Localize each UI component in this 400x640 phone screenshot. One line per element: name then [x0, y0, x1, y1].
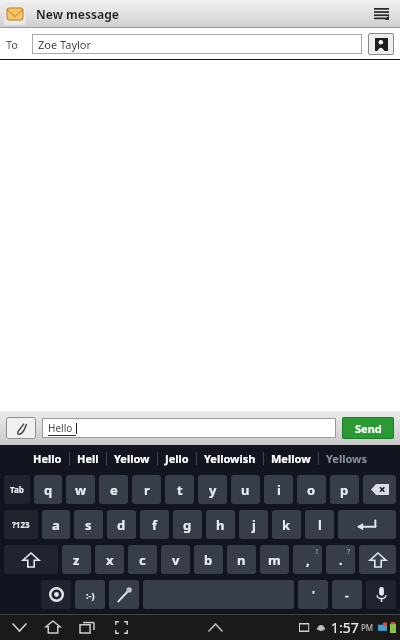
button[interactable]: Enter [338, 510, 396, 539]
staticText: g [183, 516, 192, 534]
staticText: q [44, 481, 53, 499]
button[interactable]: Hello [42, 418, 336, 438]
button[interactable]: Handwriting [109, 580, 139, 609]
staticText: Hello [33, 451, 62, 466]
staticText: , [306, 551, 310, 569]
button[interactable]: w [66, 475, 95, 504]
button[interactable]: m [260, 545, 289, 574]
button[interactable]: Voice input [366, 580, 396, 609]
staticText: Jello [165, 451, 189, 466]
staticText: t [177, 481, 183, 499]
button[interactable]: Apostrophe [298, 580, 328, 609]
button[interactable]: y [198, 475, 227, 504]
staticText: Send [355, 421, 382, 436]
button[interactable]: Emoji [75, 580, 105, 609]
button[interactable]: z [62, 545, 91, 574]
staticText: e [110, 481, 118, 499]
button[interactable]: c [128, 545, 157, 574]
button[interactable]: s [74, 510, 103, 539]
button[interactable]: Dash [332, 580, 362, 609]
staticText: p [340, 481, 349, 499]
button[interactable]: f [140, 510, 169, 539]
staticText: s [85, 516, 92, 534]
staticText: Yellow [114, 451, 150, 466]
staticText: z [73, 551, 80, 569]
button[interactable]: j [239, 510, 268, 539]
staticText: m [268, 551, 281, 569]
button[interactable]: Backspace [363, 475, 396, 504]
button[interactable]: Hide keyboard [8, 616, 30, 638]
staticText: 1:57 [331, 618, 359, 637]
button[interactable]: Tab [4, 475, 30, 504]
staticText: Yellows [326, 451, 368, 466]
staticText: x [106, 551, 114, 569]
staticText: n [237, 551, 246, 569]
button[interactable]: d [107, 510, 136, 539]
staticText: v [172, 551, 180, 569]
button[interactable]: Attach [6, 417, 36, 439]
button[interactable]: Hell [70, 451, 106, 466]
button[interactable]: More options [368, 1, 394, 27]
staticText: d [117, 516, 126, 534]
button[interactable]: Yellows [319, 451, 375, 466]
button[interactable]: h [206, 510, 235, 539]
staticText: w [75, 481, 87, 499]
button[interactable]: b [194, 545, 223, 574]
button[interactable]: Shift right [359, 545, 396, 574]
staticText: y [209, 481, 217, 499]
button[interactable]: Hello [26, 451, 69, 466]
button[interactable]: g [173, 510, 202, 539]
button[interactable]: e [99, 475, 128, 504]
button[interactable]: t [165, 475, 194, 504]
button[interactable]: v [161, 545, 190, 574]
button[interactable]: Yellowish [197, 451, 263, 466]
staticText: ?123 [12, 519, 30, 530]
staticText: Mellow [271, 451, 311, 466]
staticText: . [339, 551, 343, 569]
staticText: Tab [10, 484, 24, 495]
button[interactable]: Choose contact [368, 33, 394, 55]
button[interactable]: , [293, 545, 322, 574]
button[interactable]: Send [342, 417, 394, 439]
button[interactable]: Mellow [264, 451, 318, 466]
staticText: b [204, 551, 213, 569]
button[interactable]: Screenshot [110, 616, 132, 638]
button[interactable]: Zoe Taylor [32, 34, 362, 54]
button[interactable]: r [132, 475, 161, 504]
staticText: i [277, 481, 281, 499]
staticText: ? [347, 547, 351, 557]
staticText: Hell [77, 451, 99, 466]
staticText: c [139, 551, 146, 569]
staticText: a [52, 516, 60, 534]
staticText: Hello [48, 421, 73, 435]
button[interactable]: i [264, 475, 293, 504]
button[interactable]: App icon [4, 3, 26, 25]
button[interactable]: a [42, 510, 70, 539]
button[interactable]: p [330, 475, 359, 504]
button[interactable]: l [305, 510, 334, 539]
staticText: k [282, 516, 291, 534]
button[interactable]: Expand [203, 618, 228, 637]
button[interactable]: ?123 [4, 510, 38, 539]
staticText: r [144, 481, 150, 499]
button[interactable]: Settings [41, 580, 71, 609]
staticText: Yellowish [204, 451, 256, 466]
button[interactable]: Recents [76, 616, 98, 638]
button[interactable]: q [34, 475, 62, 504]
button[interactable]: Yellow [107, 451, 157, 466]
staticText: o [307, 481, 316, 499]
button[interactable]: . [326, 545, 355, 574]
button[interactable]: u [231, 475, 260, 504]
button[interactable]: o [297, 475, 326, 504]
staticText: ' [312, 587, 315, 602]
staticText: Zoe Taylor [38, 37, 92, 52]
button[interactable]: x [95, 545, 124, 574]
button[interactable]: n [227, 545, 256, 574]
button[interactable]: Home [42, 616, 64, 638]
button[interactable]: k [272, 510, 301, 539]
button[interactable]: Jello [158, 451, 196, 466]
staticText: To [6, 37, 32, 52]
staticText: j [252, 516, 256, 534]
button[interactable]: Shift [4, 545, 58, 574]
